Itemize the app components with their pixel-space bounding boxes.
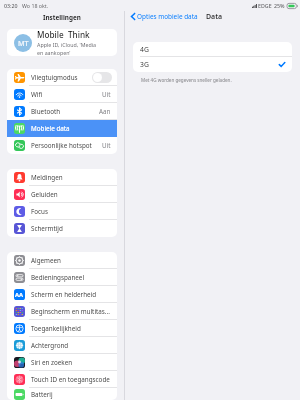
- button[interactable]: Algemeen: [7, 252, 117, 269]
- button[interactable]: Batterij: [7, 388, 117, 400]
- staticText: Batterij: [31, 390, 111, 399]
- staticText: Apple ID, iCloud, 'Media: [37, 41, 97, 48]
- staticText: Toegankelijkheid: [31, 324, 111, 333]
- button[interactable]: Touch ID en toegangscode: [7, 371, 117, 388]
- button[interactable]: AA: [7, 286, 117, 303]
- button[interactable]: Meldingen: [7, 169, 117, 186]
- staticText: Focus: [31, 207, 111, 216]
- staticText: Bluetooth: [31, 107, 99, 116]
- staticText: 4G: [140, 45, 149, 54]
- staticText: Uit: [102, 90, 111, 99]
- button[interactable]: Beginscherm en multitas...: [7, 303, 117, 320]
- staticText: Algemeen: [31, 256, 111, 265]
- staticText: Instellingen: [43, 13, 81, 22]
- staticText: Bedieningspaneel: [31, 273, 111, 282]
- staticText: 03:20: [4, 2, 18, 9]
- staticText: Siri en zoeken: [31, 358, 111, 367]
- button[interactable]: Bluetooth: [7, 103, 117, 120]
- button[interactable]: 4G: [133, 42, 292, 57]
- button[interactable]: Achtergrond: [7, 337, 117, 354]
- staticText: 25%: [274, 2, 285, 9]
- button[interactable]: Opties mobiele data: [131, 12, 198, 21]
- staticText: Met 4G worden gegevens sneller geladen.: [141, 77, 232, 83]
- staticText: en aankopen': [37, 49, 71, 56]
- button[interactable]: Focus: [7, 203, 117, 220]
- staticText: Aan: [99, 107, 111, 116]
- staticText: Meldingen: [31, 173, 111, 182]
- button[interactable]: Schermtijd: [7, 220, 117, 237]
- staticText: AA: [15, 291, 24, 299]
- staticText: Opties mobiele data: [137, 12, 198, 21]
- staticText: Scherm en helderheid: [31, 290, 111, 299]
- staticText: Uit: [102, 141, 111, 150]
- staticText: Mobile Think: [37, 29, 90, 40]
- staticText: Vliegtuigmodus: [31, 73, 91, 82]
- staticText: Data: [206, 12, 223, 21]
- button[interactable]: MT: [7, 29, 117, 56]
- button[interactable]: Bedieningspaneel: [7, 269, 117, 286]
- staticText: Achtergrond: [31, 341, 111, 350]
- staticText: 3G: [140, 60, 279, 69]
- staticText: Geluiden: [31, 190, 111, 199]
- staticText: Touch ID en toegangscode: [31, 375, 111, 384]
- staticText: Mobiele data: [31, 124, 111, 133]
- staticText: Persoonlijke hotspot: [31, 141, 102, 150]
- staticText: Beginscherm en multitas...: [31, 307, 111, 316]
- staticText: EDGE: [258, 2, 272, 9]
- button[interactable]: Wifi: [7, 86, 117, 103]
- staticText: Schermtijd: [31, 224, 111, 233]
- staticText: Wo 18 okt.: [22, 2, 49, 9]
- button[interactable]: Persoonlijke hotspot: [7, 137, 117, 154]
- button[interactable]: Vliegtuigmodus: [7, 69, 117, 86]
- staticText: Wifi: [31, 90, 102, 99]
- button[interactable]: Siri en zoeken: [7, 354, 117, 371]
- button[interactable]: Mobiele data: [7, 120, 117, 137]
- staticText: MT: [18, 38, 29, 48]
- button[interactable]: Toegankelijkheid: [7, 320, 117, 337]
- button[interactable]: Geluiden: [7, 186, 117, 203]
- button[interactable]: 3G: [133, 57, 292, 72]
